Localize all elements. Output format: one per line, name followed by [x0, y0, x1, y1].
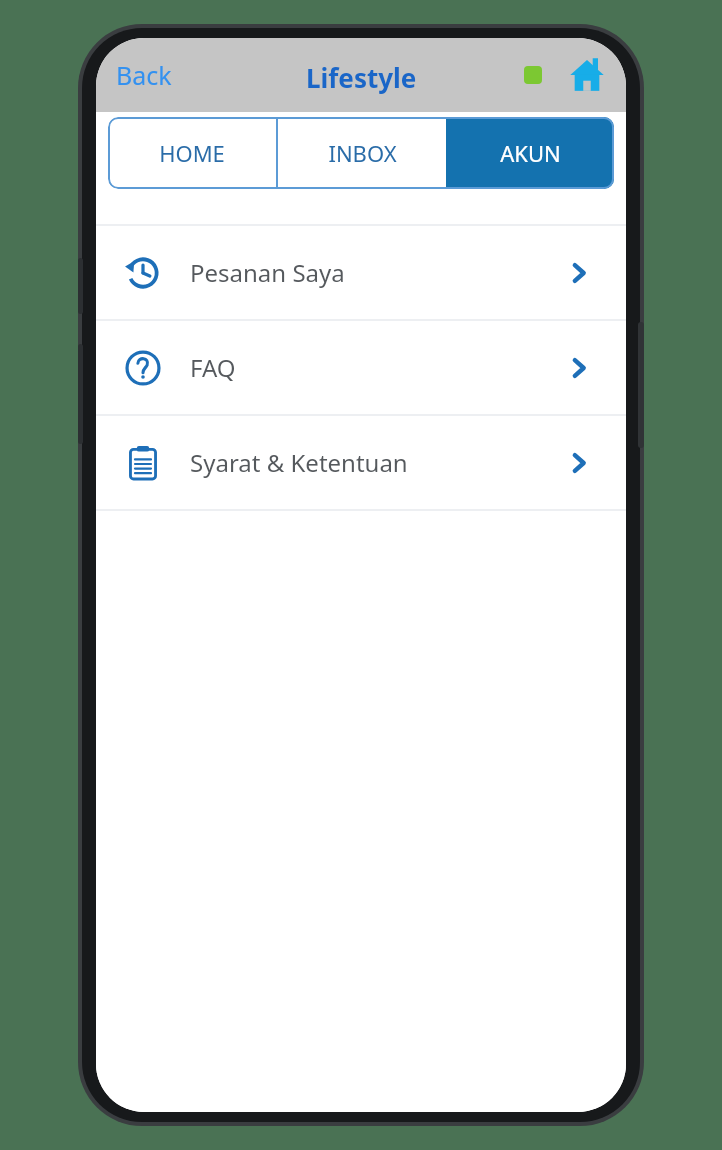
staticText: Pesanan Saya: [190, 256, 562, 289]
staticText: Lifestyle: [306, 60, 417, 95]
button[interactable]: Back: [110, 52, 178, 98]
staticText: INBOX: [328, 138, 397, 168]
button[interactable]: FAQ: [96, 321, 626, 414]
staticText: FAQ: [190, 351, 562, 384]
staticText: AKUN: [500, 138, 561, 168]
button[interactable]: INBOX: [278, 117, 446, 189]
button[interactable]: Syarat & Ketentuan: [96, 416, 626, 509]
staticText: HOME: [159, 138, 225, 168]
staticText: Back: [116, 58, 172, 92]
button[interactable]: AKUN: [446, 117, 614, 189]
button[interactable]: Pesanan Saya: [96, 226, 626, 319]
button[interactable]: HOME: [108, 117, 276, 189]
staticText: Syarat & Ketentuan: [190, 446, 562, 479]
button[interactable]: Home: [562, 50, 612, 100]
